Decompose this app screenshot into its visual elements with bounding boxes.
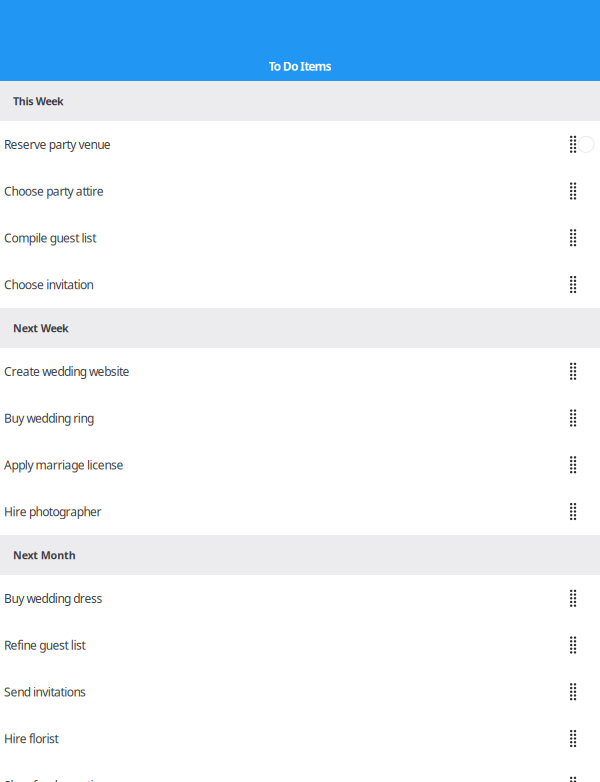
button[interactable]: Create wedding website xyxy=(0,348,556,395)
button[interactable]: Reorder Send invitations xyxy=(556,668,600,715)
button[interactable]: Send invitations xyxy=(0,668,556,715)
button[interactable]: Hire photographer xyxy=(0,488,556,535)
button[interactable]: Reorder Create wedding website xyxy=(556,348,600,395)
button[interactable]: Reorder Choose party attire xyxy=(556,168,600,215)
button[interactable]: Reorder Hire photographer xyxy=(556,488,600,535)
staticText: To Do Items xyxy=(268,58,331,74)
staticText: Compile guest list xyxy=(4,230,96,246)
button[interactable]: Reorder Apply marriage license xyxy=(556,441,600,488)
button[interactable]: Apply marriage license xyxy=(0,441,556,488)
staticText: Buy wedding ring xyxy=(4,410,94,426)
button[interactable]: Reorder Hire florist xyxy=(556,715,600,762)
staticText: Hire photographer xyxy=(4,504,102,520)
staticText: This Week xyxy=(13,94,64,108)
button[interactable]: Compile guest list xyxy=(0,214,556,261)
button[interactable]: Reorder Buy wedding ring xyxy=(556,395,600,442)
staticText: Refine guest list xyxy=(4,637,86,653)
staticText: Choose party attire xyxy=(4,183,104,199)
staticText: Choose invitation xyxy=(4,277,94,293)
staticText: Send invitations xyxy=(4,684,86,700)
staticText: Shop for decorations xyxy=(4,777,112,782)
staticText: Apply marriage license xyxy=(4,457,124,473)
staticText: Next Week xyxy=(13,321,69,335)
button[interactable]: Buy wedding dress xyxy=(0,575,556,622)
staticText: Hire florist xyxy=(4,731,59,747)
button[interactable]: Buy wedding ring xyxy=(0,395,556,442)
button[interactable]: Hire florist xyxy=(0,715,556,762)
button[interactable]: Reorder Refine guest list xyxy=(556,622,600,669)
button[interactable]: Shop for decorations xyxy=(0,762,556,782)
staticText: Reserve party venue xyxy=(4,136,111,152)
button[interactable]: Reserve party venue xyxy=(0,121,556,168)
button[interactable]: Reorder Reserve party venue xyxy=(556,121,600,168)
button[interactable]: Reorder Shop for decorations xyxy=(556,762,600,782)
staticText: Create wedding website xyxy=(4,363,130,379)
button[interactable]: Refine guest list xyxy=(0,622,556,669)
staticText: Buy wedding dress xyxy=(4,590,103,606)
button[interactable]: Reorder Choose invitation xyxy=(556,261,600,308)
button[interactable]: Reorder Compile guest list xyxy=(556,214,600,261)
button[interactable]: Choose invitation xyxy=(0,261,556,308)
staticText: Next Month xyxy=(13,548,76,562)
button[interactable]: Choose party attire xyxy=(0,168,556,215)
button[interactable]: Reorder Buy wedding dress xyxy=(556,575,600,622)
